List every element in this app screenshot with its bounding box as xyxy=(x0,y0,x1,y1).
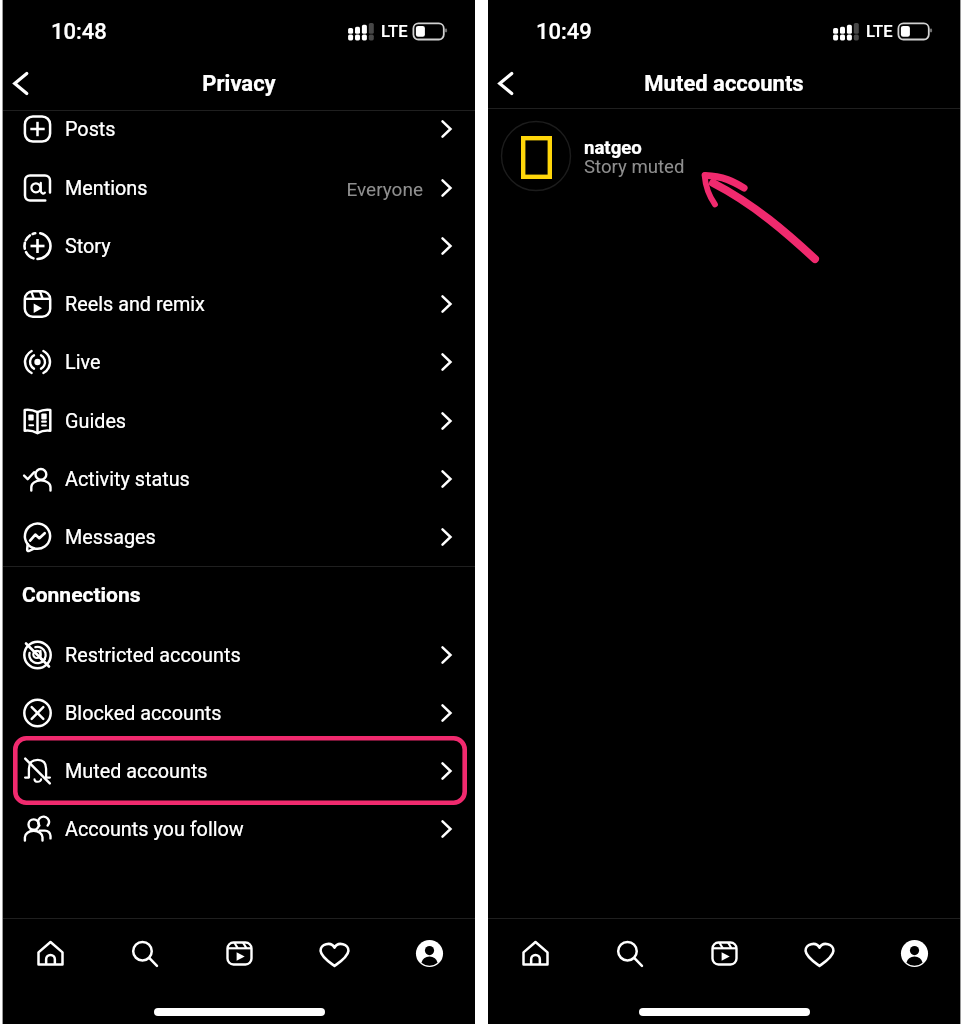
staticText: Muted accounts xyxy=(65,760,208,783)
button[interactable]: Back xyxy=(3,60,49,106)
button[interactable]: Search xyxy=(605,929,653,977)
button[interactable]: Posts xyxy=(3,100,475,158)
staticText: Live xyxy=(65,351,101,374)
staticText: Muted accounts xyxy=(488,71,960,97)
staticText: Activity status xyxy=(65,468,190,491)
button[interactable]: Mentions xyxy=(3,159,475,217)
staticText: Connections xyxy=(22,583,141,608)
staticText: Reels and remix xyxy=(65,293,205,316)
button[interactable]: Accounts you follow xyxy=(3,800,475,858)
button[interactable]: Restricted accounts xyxy=(3,626,475,684)
staticText: Restricted accounts xyxy=(65,644,241,667)
staticText: 10:49 xyxy=(536,19,592,45)
staticText: LTE xyxy=(866,22,893,41)
staticText: Everyone xyxy=(3,178,423,200)
staticText: natgeo xyxy=(584,137,642,159)
button[interactable]: Activity xyxy=(795,929,843,977)
button[interactable]: Reels and remix xyxy=(3,275,475,333)
staticText: Mentions xyxy=(65,177,148,200)
button[interactable]: Activity xyxy=(310,929,358,977)
staticText: Guides xyxy=(65,410,127,433)
button[interactable]: Home xyxy=(511,929,559,977)
button[interactable]: Story xyxy=(3,217,475,275)
staticText: Posts xyxy=(65,118,116,141)
button[interactable]: Back xyxy=(488,60,534,106)
button[interactable]: Messages xyxy=(3,508,475,566)
staticText: Privacy xyxy=(3,71,475,97)
staticText: LTE xyxy=(381,22,408,41)
button[interactable]: Blocked accounts xyxy=(3,684,475,742)
button[interactable]: Reels xyxy=(700,929,748,977)
button[interactable]: Activity status xyxy=(3,450,475,508)
button[interactable]: Guides xyxy=(3,392,475,450)
staticText: Messages xyxy=(65,526,156,549)
staticText: Story xyxy=(65,235,111,258)
staticText: Accounts you follow xyxy=(65,818,244,841)
button[interactable]: natgeo xyxy=(488,118,960,196)
button[interactable]: Reels xyxy=(215,929,263,977)
button[interactable]: Profile xyxy=(405,929,453,977)
staticText: Story muted xyxy=(584,156,685,178)
staticText: 10:48 xyxy=(51,19,107,45)
button[interactable]: Search xyxy=(120,929,168,977)
button[interactable]: Live xyxy=(3,333,475,391)
button[interactable]: Home xyxy=(26,929,74,977)
staticText: Blocked accounts xyxy=(65,702,222,725)
button[interactable]: Profile xyxy=(890,929,938,977)
button[interactable]: Muted accounts xyxy=(3,742,475,800)
